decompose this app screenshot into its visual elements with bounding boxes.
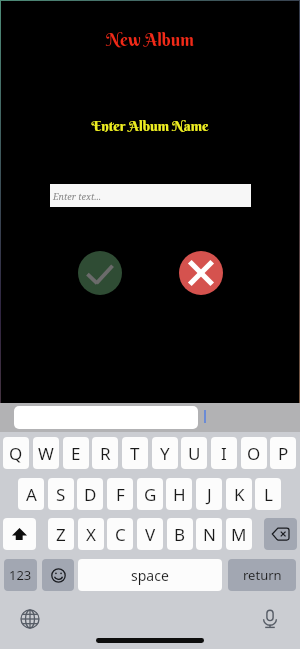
staticText: O	[247, 442, 261, 465]
staticText: return	[243, 566, 282, 584]
button[interactable]: B	[167, 518, 193, 550]
button[interactable]: Z	[48, 518, 74, 550]
button[interactable]: N	[196, 518, 222, 550]
button[interactable]: M	[226, 518, 252, 550]
button[interactable]: Enter text...	[50, 184, 251, 207]
button[interactable]: E	[63, 437, 89, 469]
button[interactable]: space	[78, 559, 222, 591]
staticText: N	[203, 523, 216, 546]
staticText: E	[71, 442, 81, 465]
button[interactable]: P	[270, 437, 296, 469]
staticText: Z	[56, 523, 66, 546]
button[interactable]: K	[226, 478, 252, 510]
staticText: G	[144, 483, 157, 506]
button[interactable]: T	[122, 437, 148, 469]
staticText: U	[188, 442, 201, 465]
button[interactable]: J	[196, 478, 222, 510]
button[interactable]: L	[255, 478, 281, 510]
staticText: Q	[9, 442, 23, 465]
staticText: A	[26, 483, 37, 506]
staticText: L	[264, 483, 273, 506]
button[interactable]: C	[107, 518, 133, 550]
button[interactable]: Backspace	[264, 518, 297, 550]
staticText: Enter text...	[53, 190, 102, 202]
staticText: B	[174, 523, 186, 546]
staticText: F	[116, 483, 125, 506]
button[interactable]: Q	[3, 437, 29, 469]
button[interactable]: S	[48, 478, 74, 510]
button[interactable]: Dictation	[258, 606, 282, 630]
button[interactable]: U	[181, 437, 207, 469]
button[interactable]: Y	[152, 437, 178, 469]
staticText: Y	[160, 442, 170, 465]
staticText: I	[221, 442, 227, 465]
button[interactable]: D	[77, 478, 103, 510]
staticText: S	[56, 483, 66, 506]
staticText: H	[173, 483, 186, 506]
button[interactable]: Emoji	[42, 559, 74, 591]
button[interactable]	[14, 406, 198, 429]
staticText: Enter Album Name	[91, 117, 209, 134]
staticText: space	[131, 566, 169, 585]
button[interactable]: R	[92, 437, 118, 469]
staticText: V	[145, 523, 156, 546]
staticText: X	[86, 523, 96, 546]
button[interactable]: I	[211, 437, 237, 469]
button[interactable]: Change keyboard	[18, 607, 42, 631]
staticText: New Album	[106, 29, 194, 50]
button[interactable]: V	[137, 518, 163, 550]
button[interactable]: return	[228, 559, 296, 591]
staticText: D	[84, 483, 97, 506]
button[interactable]: O	[241, 437, 267, 469]
button[interactable]: Cancel	[179, 251, 223, 295]
button[interactable]: H	[166, 478, 192, 510]
button[interactable]: 123	[4, 559, 37, 591]
staticText: T	[130, 442, 140, 465]
button[interactable]: Confirm	[78, 251, 122, 295]
button[interactable]: A	[18, 478, 44, 510]
staticText: J	[207, 483, 212, 506]
button[interactable]: G	[137, 478, 163, 510]
button[interactable]: F	[107, 478, 133, 510]
staticText: 123	[9, 566, 32, 584]
button[interactable]: X	[78, 518, 104, 550]
staticText: M	[231, 523, 247, 546]
staticText: K	[234, 483, 245, 506]
staticText: W	[38, 442, 54, 465]
button[interactable]: W	[33, 437, 59, 469]
staticText: C	[115, 523, 126, 546]
staticText: P	[278, 442, 289, 465]
staticText: R	[100, 442, 111, 465]
button[interactable]: Shift	[3, 518, 36, 550]
